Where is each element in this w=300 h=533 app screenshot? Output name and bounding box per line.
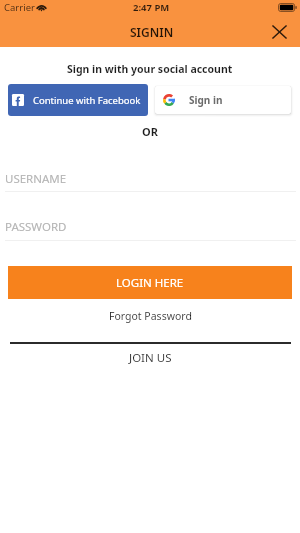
button[interactable]: LOGIN HERE xyxy=(8,266,292,299)
staticText: Carrier xyxy=(4,1,35,14)
button[interactable]: JOIN US xyxy=(121,348,180,368)
button[interactable]: Close xyxy=(267,22,289,44)
button[interactable]: Continue with Facebook xyxy=(8,84,148,116)
button[interactable]: Forgot Password xyxy=(101,307,200,325)
staticText: Sign in with your social account xyxy=(67,62,233,76)
staticText: Continue with Facebook xyxy=(33,94,141,107)
staticText: Forgot Password xyxy=(109,309,192,323)
staticText: PASSWORD xyxy=(5,219,67,235)
staticText: JOIN US xyxy=(129,350,172,366)
staticText: USERNAME xyxy=(5,171,67,187)
staticText: Sign in xyxy=(189,93,223,107)
staticText: SIGNIN xyxy=(130,24,174,40)
staticText: LOGIN HERE xyxy=(116,275,184,291)
staticText: OR xyxy=(142,124,158,139)
button[interactable]: Sign in xyxy=(155,86,291,114)
staticText: 2:47 PM xyxy=(133,1,170,14)
